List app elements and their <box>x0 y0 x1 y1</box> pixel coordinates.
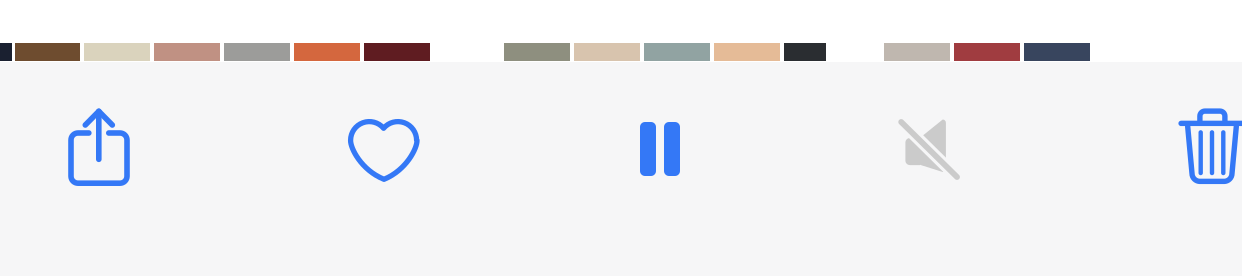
button[interactable]: Delete <box>1137 87 1242 207</box>
button[interactable]: Share <box>24 87 174 207</box>
button[interactable]: Mute <box>855 89 1005 209</box>
button[interactable]: Favorite <box>309 90 459 210</box>
button[interactable]: Pause <box>585 89 735 209</box>
